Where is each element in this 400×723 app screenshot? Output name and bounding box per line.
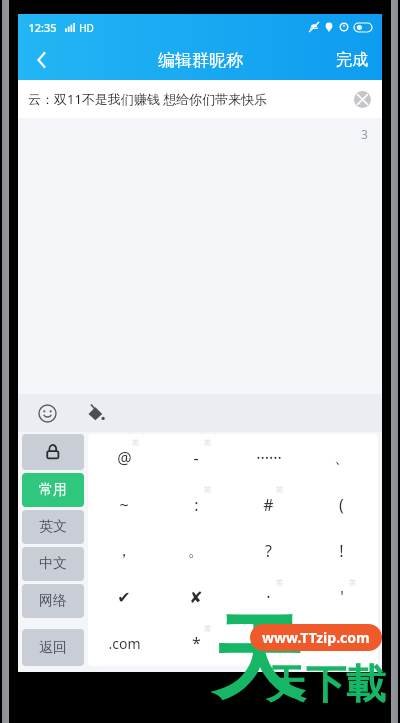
staticText: ~ — [119, 494, 129, 516]
staticText: ✘ — [189, 588, 203, 607]
button[interactable]: ~ — [88, 481, 160, 528]
button[interactable]: 完成 — [322, 40, 382, 80]
staticText: 12:35 — [28, 20, 57, 35]
staticText: 、 — [334, 448, 350, 468]
staticText: 。 — [188, 541, 204, 561]
staticText: * — [192, 632, 201, 654]
staticText: - — [193, 447, 199, 469]
button[interactable]: 返回 — [22, 629, 84, 666]
staticText: 英 — [276, 578, 283, 587]
button[interactable]: 英 — [160, 481, 232, 528]
button[interactable]: ? — [232, 528, 305, 574]
staticText: ( — [339, 494, 344, 516]
staticText: 返回 — [39, 639, 67, 657]
button[interactable]: Theme — [80, 398, 110, 428]
button[interactable]: 网络 — [22, 584, 84, 618]
staticText: www.TTzip.com — [262, 628, 370, 647]
button[interactable]: ✘ — [160, 574, 232, 620]
staticText: ? — [265, 540, 272, 562]
button[interactable]: ( — [305, 481, 378, 528]
button[interactable]: ， — [88, 528, 160, 574]
button[interactable]: 常用 — [22, 473, 84, 507]
button[interactable] — [305, 620, 378, 666]
staticText: HD — [79, 21, 94, 35]
staticText: ! — [339, 540, 344, 562]
staticText: : — [194, 494, 199, 516]
button[interactable]: ······ — [232, 434, 305, 481]
staticText: 云：双11不是我们赚钱 想给你们带来快乐 — [28, 90, 268, 108]
staticText: 天下載 — [266, 659, 386, 709]
staticText: @ — [117, 447, 132, 469]
button[interactable]: 。 — [160, 528, 232, 574]
staticText: ······ — [256, 447, 282, 469]
button[interactable]: 英文 — [22, 510, 84, 544]
staticText: 常用 — [39, 481, 67, 499]
button[interactable]: 英 — [160, 434, 232, 481]
button[interactable]: Emoji — [32, 398, 62, 428]
button[interactable]: 英 — [305, 574, 378, 620]
button[interactable] — [232, 620, 305, 666]
staticText: ' — [340, 586, 344, 608]
staticText: 网络 — [39, 592, 67, 610]
button[interactable]: Back — [18, 40, 66, 80]
button[interactable]: Lock — [22, 434, 84, 470]
staticText: .com — [108, 634, 141, 653]
staticText: ， — [116, 541, 132, 561]
staticText: ✔ — [117, 588, 131, 607]
staticText: 编辑群昵称 — [158, 50, 243, 71]
staticText: 天 — [212, 601, 304, 717]
staticText: 英 — [132, 438, 139, 447]
staticText: 英文 — [39, 518, 67, 536]
button[interactable]: .com — [88, 620, 160, 666]
button[interactable]: Clear — [350, 87, 374, 111]
staticText: · — [266, 586, 271, 608]
staticText: 完成 — [336, 50, 368, 70]
button[interactable]: 英 — [160, 620, 232, 666]
button[interactable]: 英 — [88, 434, 160, 481]
button[interactable]: 英 — [232, 574, 305, 620]
staticText: 英 — [204, 624, 211, 633]
staticText: 英 — [204, 438, 211, 447]
staticText: 英 — [204, 485, 211, 494]
staticText: 中文 — [39, 555, 67, 573]
staticText: 3 — [361, 126, 368, 142]
staticText: 英 — [276, 485, 283, 494]
staticText: # — [263, 494, 274, 516]
button[interactable]: 中文 — [22, 547, 84, 581]
button[interactable]: 英 — [232, 481, 305, 528]
button[interactable]: 、 — [305, 434, 378, 481]
staticText: 英 — [349, 578, 356, 587]
button[interactable]: ! — [305, 528, 378, 574]
button[interactable]: ✔ — [88, 574, 160, 620]
